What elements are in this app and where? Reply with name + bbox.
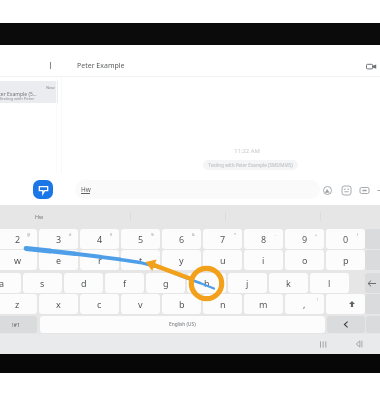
button[interactable]: GIF: [357, 183, 371, 197]
button[interactable]: Video call: [364, 60, 378, 73]
button[interactable]: 4: [80, 229, 119, 249]
staticText: !#1: [12, 321, 21, 328]
staticText: z: [15, 298, 20, 310]
button[interactable]: Recents: [317, 338, 329, 350]
staticText: e: [56, 254, 62, 266]
staticText: x: [56, 298, 61, 310]
button[interactable]: Switch to chat: [33, 180, 53, 199]
button[interactable]: i: [244, 250, 283, 270]
staticText: #: [69, 232, 72, 237]
button[interactable]: z: [0, 294, 37, 314]
staticText: ,: [303, 298, 306, 310]
staticText: v: [138, 298, 143, 310]
staticText: 5: [138, 233, 144, 245]
button[interactable]: n: [203, 294, 242, 314]
staticText: i: [262, 254, 265, 266]
staticText: c: [97, 298, 102, 310]
button[interactable]: o: [285, 250, 324, 270]
button[interactable]: j: [228, 273, 267, 293]
button[interactable]: .: [326, 294, 365, 314]
staticText: k: [286, 277, 291, 289]
staticText: *: [234, 232, 236, 237]
button[interactable]: t: [121, 250, 160, 270]
staticText: Now: [46, 85, 55, 90]
staticText: b: [179, 298, 185, 310]
button[interactable]: English (US): [40, 316, 325, 333]
button[interactable]: 9: [285, 229, 324, 249]
staticText: 7: [220, 233, 226, 245]
button[interactable]: [75, 180, 320, 199]
button[interactable]: Photos: [320, 183, 334, 197]
staticText: n: [220, 298, 226, 310]
button[interactable]: More options: [43, 58, 57, 72]
staticText: &: [192, 232, 195, 237]
button[interactable]: 3: [39, 229, 78, 249]
staticText: g: [163, 277, 169, 289]
staticText: s: [40, 277, 45, 289]
button[interactable]: 8: [244, 229, 283, 249]
staticText: %: [151, 232, 154, 237]
staticText: Peter Example: [77, 61, 125, 71]
button[interactable]: l: [310, 273, 349, 293]
button[interactable]: !#1: [0, 316, 37, 333]
button[interactable]: Back: [354, 338, 366, 350]
button[interactable]: e: [39, 250, 78, 270]
staticText: !: [317, 297, 318, 302]
button[interactable]: g: [146, 273, 185, 293]
staticText: Testing with Peter: [0, 96, 35, 102]
button[interactable]: r: [80, 250, 119, 270]
button[interactable]: f: [105, 273, 144, 293]
button[interactable]: d: [64, 273, 103, 293]
button[interactable]: Backspace: [365, 273, 380, 293]
button[interactable]: 2: [0, 229, 37, 249]
staticText: Hw: [35, 213, 44, 220]
button[interactable]: 6: [162, 229, 201, 249]
button[interactable]: u: [203, 250, 242, 270]
button[interactable]: Shift: [340, 294, 364, 314]
button[interactable]: s: [23, 273, 62, 293]
button[interactable]: ,: [285, 294, 324, 314]
button[interactable]: v: [121, 294, 160, 314]
button[interactable]: Enter: [327, 316, 365, 333]
button[interactable]: x: [39, 294, 78, 314]
button[interactable]: h: [187, 273, 226, 293]
staticText: h: [204, 277, 210, 289]
button[interactable]: w: [0, 250, 37, 270]
staticText: w: [14, 254, 22, 266]
button[interactable]: m: [244, 294, 283, 314]
button[interactable]: c: [80, 294, 119, 314]
button[interactable]: p: [326, 250, 365, 270]
staticText: o: [302, 254, 308, 266]
staticText: r: [98, 254, 102, 266]
staticText: p: [343, 254, 349, 266]
staticText: 11:22 AM: [197, 147, 297, 155]
staticText: f: [123, 277, 127, 289]
button[interactable]: k: [269, 273, 308, 293]
button[interactable]: b: [162, 294, 201, 314]
staticText: 0: [343, 233, 349, 245]
staticText: 3: [56, 233, 62, 245]
staticText: m: [259, 298, 268, 310]
staticText: ter Example (5…: [0, 91, 37, 98]
button[interactable]: ter Example (5…: [0, 81, 58, 103]
staticText: (: [357, 232, 359, 237]
button[interactable]: More: [373, 183, 380, 197]
button[interactable]: y: [162, 250, 201, 270]
button[interactable]: 7: [203, 229, 242, 249]
staticText: Hw: [81, 185, 91, 194]
staticText: 4: [97, 233, 103, 245]
button[interactable]: a: [0, 273, 21, 293]
staticText: 9: [302, 233, 308, 245]
staticText: Testing with Peter Example (SMS/MMS): [203, 162, 298, 170]
staticText: 8: [261, 233, 267, 245]
staticText: -: [275, 232, 277, 237]
button[interactable]: Stickers: [339, 183, 353, 197]
button[interactable]: 5: [121, 229, 160, 249]
staticText: English (US): [169, 321, 196, 328]
button[interactable]: 0: [326, 229, 365, 249]
